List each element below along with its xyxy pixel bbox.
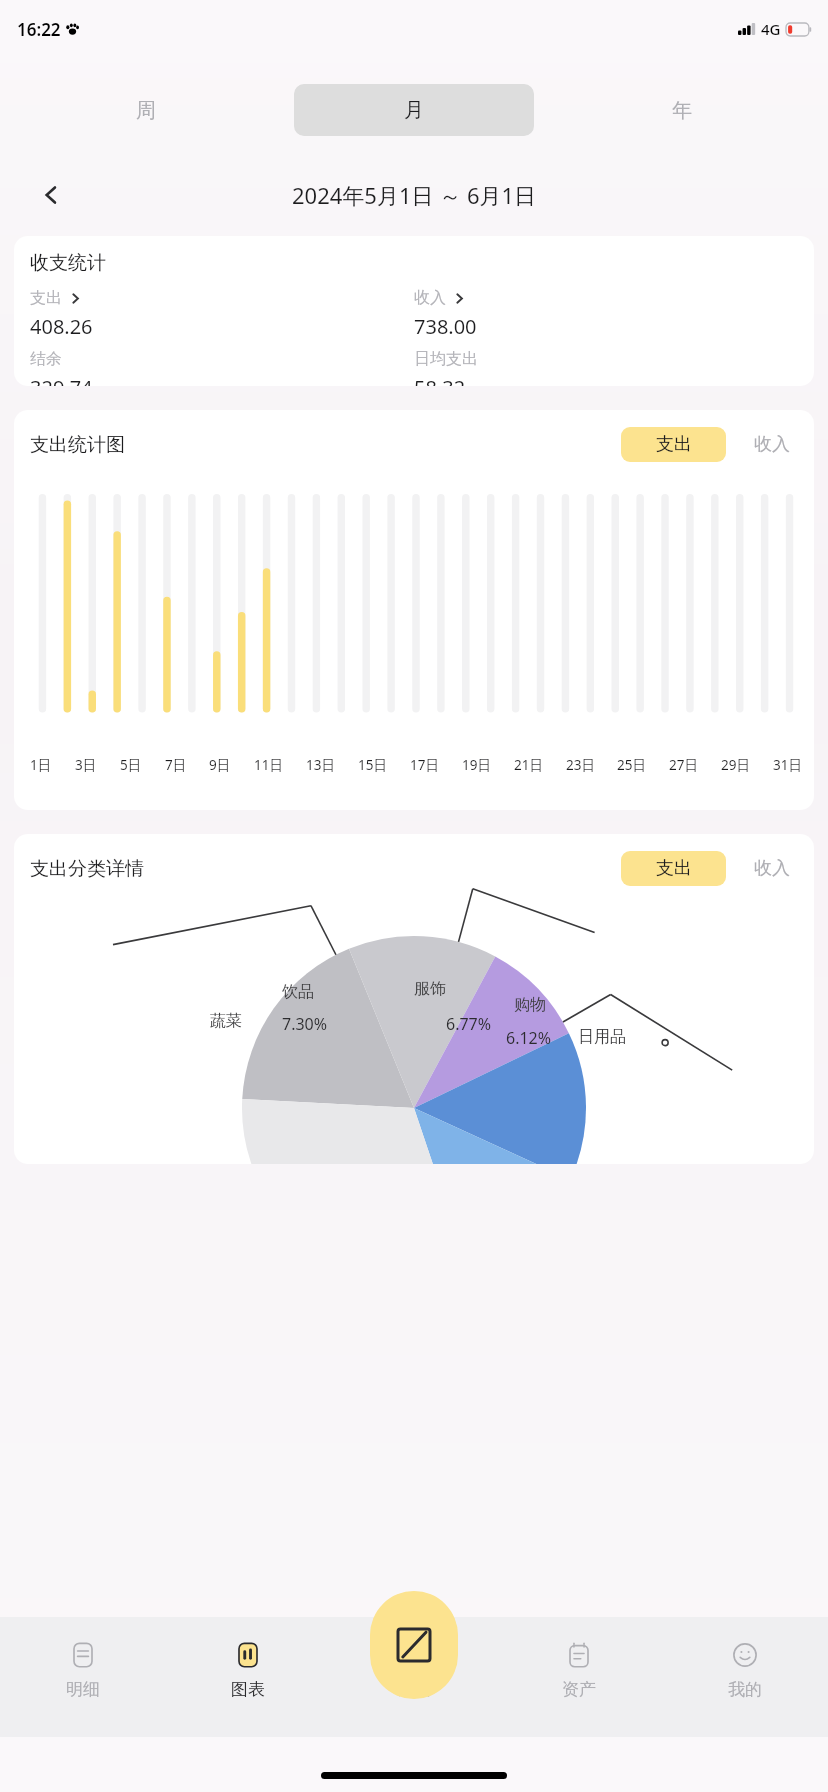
staticText: 17日	[410, 756, 439, 774]
staticText: 21日	[514, 756, 543, 774]
staticText: 19日	[462, 756, 491, 774]
staticText: 4G	[761, 19, 781, 39]
staticText: 年	[672, 98, 692, 123]
staticText: 6.12%	[506, 1027, 552, 1049]
staticText: 日均支出	[414, 349, 478, 369]
button[interactable]: 支出	[621, 427, 726, 462]
staticText: 日用品	[578, 1027, 626, 1047]
staticText: 资产	[562, 1679, 596, 1700]
staticText: 结余	[30, 349, 62, 369]
staticText: 27日	[669, 756, 698, 774]
button[interactable]: 收入	[414, 288, 465, 308]
staticText: 7日	[165, 756, 187, 774]
staticText: 13日	[306, 756, 335, 774]
staticText: 支出统计图	[30, 433, 125, 457]
button[interactable]: Previous period	[34, 178, 68, 212]
staticText: 记账	[396, 1679, 430, 1700]
button[interactable]: 明细	[0, 1617, 165, 1737]
staticText: 1日	[30, 756, 52, 774]
staticText: 支出分类详情	[30, 857, 144, 881]
button[interactable]: 记账 Add record	[370, 1591, 458, 1699]
button[interactable]: 资产	[496, 1617, 662, 1737]
staticText: 支出	[656, 857, 692, 880]
button[interactable]: 我的	[662, 1617, 828, 1737]
staticText: 329.74	[30, 374, 93, 386]
staticText: 月	[404, 98, 424, 123]
button[interactable]: 图表	[165, 1617, 330, 1737]
staticText: 738.00	[414, 313, 477, 340]
staticText: 支出	[656, 433, 692, 456]
button[interactable]: 收支统计	[14, 236, 814, 386]
staticText: 收入	[754, 857, 790, 880]
staticText: 明细	[66, 1679, 100, 1700]
staticText: 收支统计	[30, 251, 106, 275]
button[interactable]: 记账	[330, 1617, 496, 1737]
staticText: 2024年5月1日 ～ 6月1日	[292, 180, 537, 210]
staticText: 11日	[254, 756, 283, 774]
button[interactable]: 支出分类详情	[14, 834, 814, 1164]
staticText: 周	[136, 98, 156, 123]
staticText: 25日	[617, 756, 646, 774]
staticText: 6.77%	[446, 1013, 492, 1035]
button[interactable]: 收入	[754, 857, 790, 880]
staticText: 23日	[566, 756, 595, 774]
button[interactable]: 月	[294, 84, 534, 136]
staticText: 3日	[75, 756, 97, 774]
staticText: 9日	[209, 756, 231, 774]
button[interactable]: 支出	[30, 288, 81, 308]
staticText: 收入	[414, 288, 446, 308]
staticText: 58.32	[414, 374, 466, 386]
button[interactable]: 年	[562, 84, 802, 136]
staticText: 购物	[514, 995, 546, 1015]
staticText: 31日	[773, 756, 802, 774]
staticText: 5日	[120, 756, 142, 774]
staticText: 服饰	[414, 979, 446, 999]
button[interactable]: 收入	[754, 433, 790, 456]
button[interactable]: 支出	[621, 851, 726, 886]
staticText: 我的	[728, 1679, 762, 1700]
staticText: 收入	[754, 433, 790, 456]
button[interactable]: 支出统计图	[14, 410, 814, 810]
staticText: 16:22	[17, 18, 61, 41]
staticText: 7.30%	[282, 1013, 328, 1035]
staticText: 饮品	[282, 982, 314, 1002]
staticText: 15日	[358, 756, 387, 774]
staticText: 29日	[721, 756, 750, 774]
staticText: 支出	[30, 288, 62, 308]
button[interactable]: 周	[26, 84, 266, 136]
staticText: 408.26	[30, 313, 93, 340]
staticText: 蔬菜	[210, 1011, 242, 1031]
staticText: 图表	[231, 1679, 265, 1700]
